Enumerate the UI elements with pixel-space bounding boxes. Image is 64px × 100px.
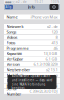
button[interactable]: Fotos	[4, 40, 60, 45]
staticText: Automatische Updates laden	[11, 74, 50, 78]
staticText: 15:21	[34, 0, 43, 4]
staticText: Songs	[6, 29, 16, 34]
staticText: Videos	[6, 35, 17, 40]
staticText: Allg.	[5, 5, 12, 9]
staticText: iPhone von Max	[30, 14, 57, 20]
button[interactable]: Name	[4, 14, 60, 19]
button[interactable]: Camera	[49, 3, 59, 10]
button[interactable]: Netzwerk	[4, 24, 60, 29]
staticText: Programme	[6, 45, 28, 51]
staticText: Name	[6, 14, 17, 20]
staticText: MD128DN	[38, 83, 57, 88]
staticText: Serial Number	[6, 86, 21, 97]
button[interactable]: Mobilfunk	[4, 73, 60, 78]
staticText: 413	[51, 40, 57, 45]
button[interactable]: Serial Number	[4, 89, 60, 94]
staticText: 8	[55, 35, 57, 40]
button[interactable]: Netzbetreiber	[4, 67, 60, 72]
staticText: o2 13.1	[45, 67, 57, 72]
button[interactable]: Songs	[4, 29, 60, 34]
staticText: Modell	[6, 83, 18, 88]
button[interactable]: Programme	[4, 46, 60, 51]
staticText: 46	[53, 45, 57, 51]
button[interactable]: Verfügbar	[4, 56, 60, 61]
staticText: Info	[27, 4, 34, 10]
button[interactable]: Allg.	[5, 5, 13, 9]
button[interactable]: Einstellungen	[4, 78, 60, 83]
staticText: Mobilfunk	[6, 72, 23, 78]
staticText: 6,1 GB	[45, 56, 57, 61]
staticText: Version	[6, 62, 19, 67]
staticText: Einstellungen	[6, 78, 28, 83]
staticText: ●●●○○ o2 - de	[5, 0, 27, 4]
button[interactable]: Videos	[4, 35, 60, 40]
staticText: Verfügbar	[6, 56, 23, 61]
staticText: 100%	[51, 0, 59, 4]
staticText: eine WLAN-Verbindung benötigt.	[11, 83, 45, 90]
staticText: Fotos	[6, 40, 15, 45]
staticText: Netzwerk	[6, 24, 23, 29]
staticText: Netzbetreiber	[6, 67, 30, 72]
staticText: 13,3 GB	[43, 51, 57, 56]
staticText: Kapazität	[6, 51, 21, 56]
button[interactable]: Modell	[4, 83, 60, 88]
staticText: o2 - de	[46, 24, 57, 29]
staticText: 120	[51, 29, 57, 34]
button[interactable]: Version	[4, 62, 60, 67]
button[interactable]: Kapazität	[4, 51, 60, 56]
staticText: und installieren — dazu wird	[11, 78, 52, 82]
staticText: an	[53, 72, 57, 78]
staticText: C39H2L3UDTDJ	[29, 89, 57, 94]
staticText: 6.1.3 (10B329)	[33, 62, 57, 67]
